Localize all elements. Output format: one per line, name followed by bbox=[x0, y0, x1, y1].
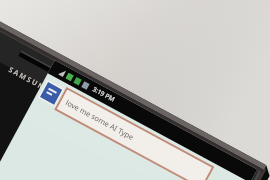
button[interactable]: Photo of a Samsung phone showing a keybo… bbox=[0, 0, 270, 180]
